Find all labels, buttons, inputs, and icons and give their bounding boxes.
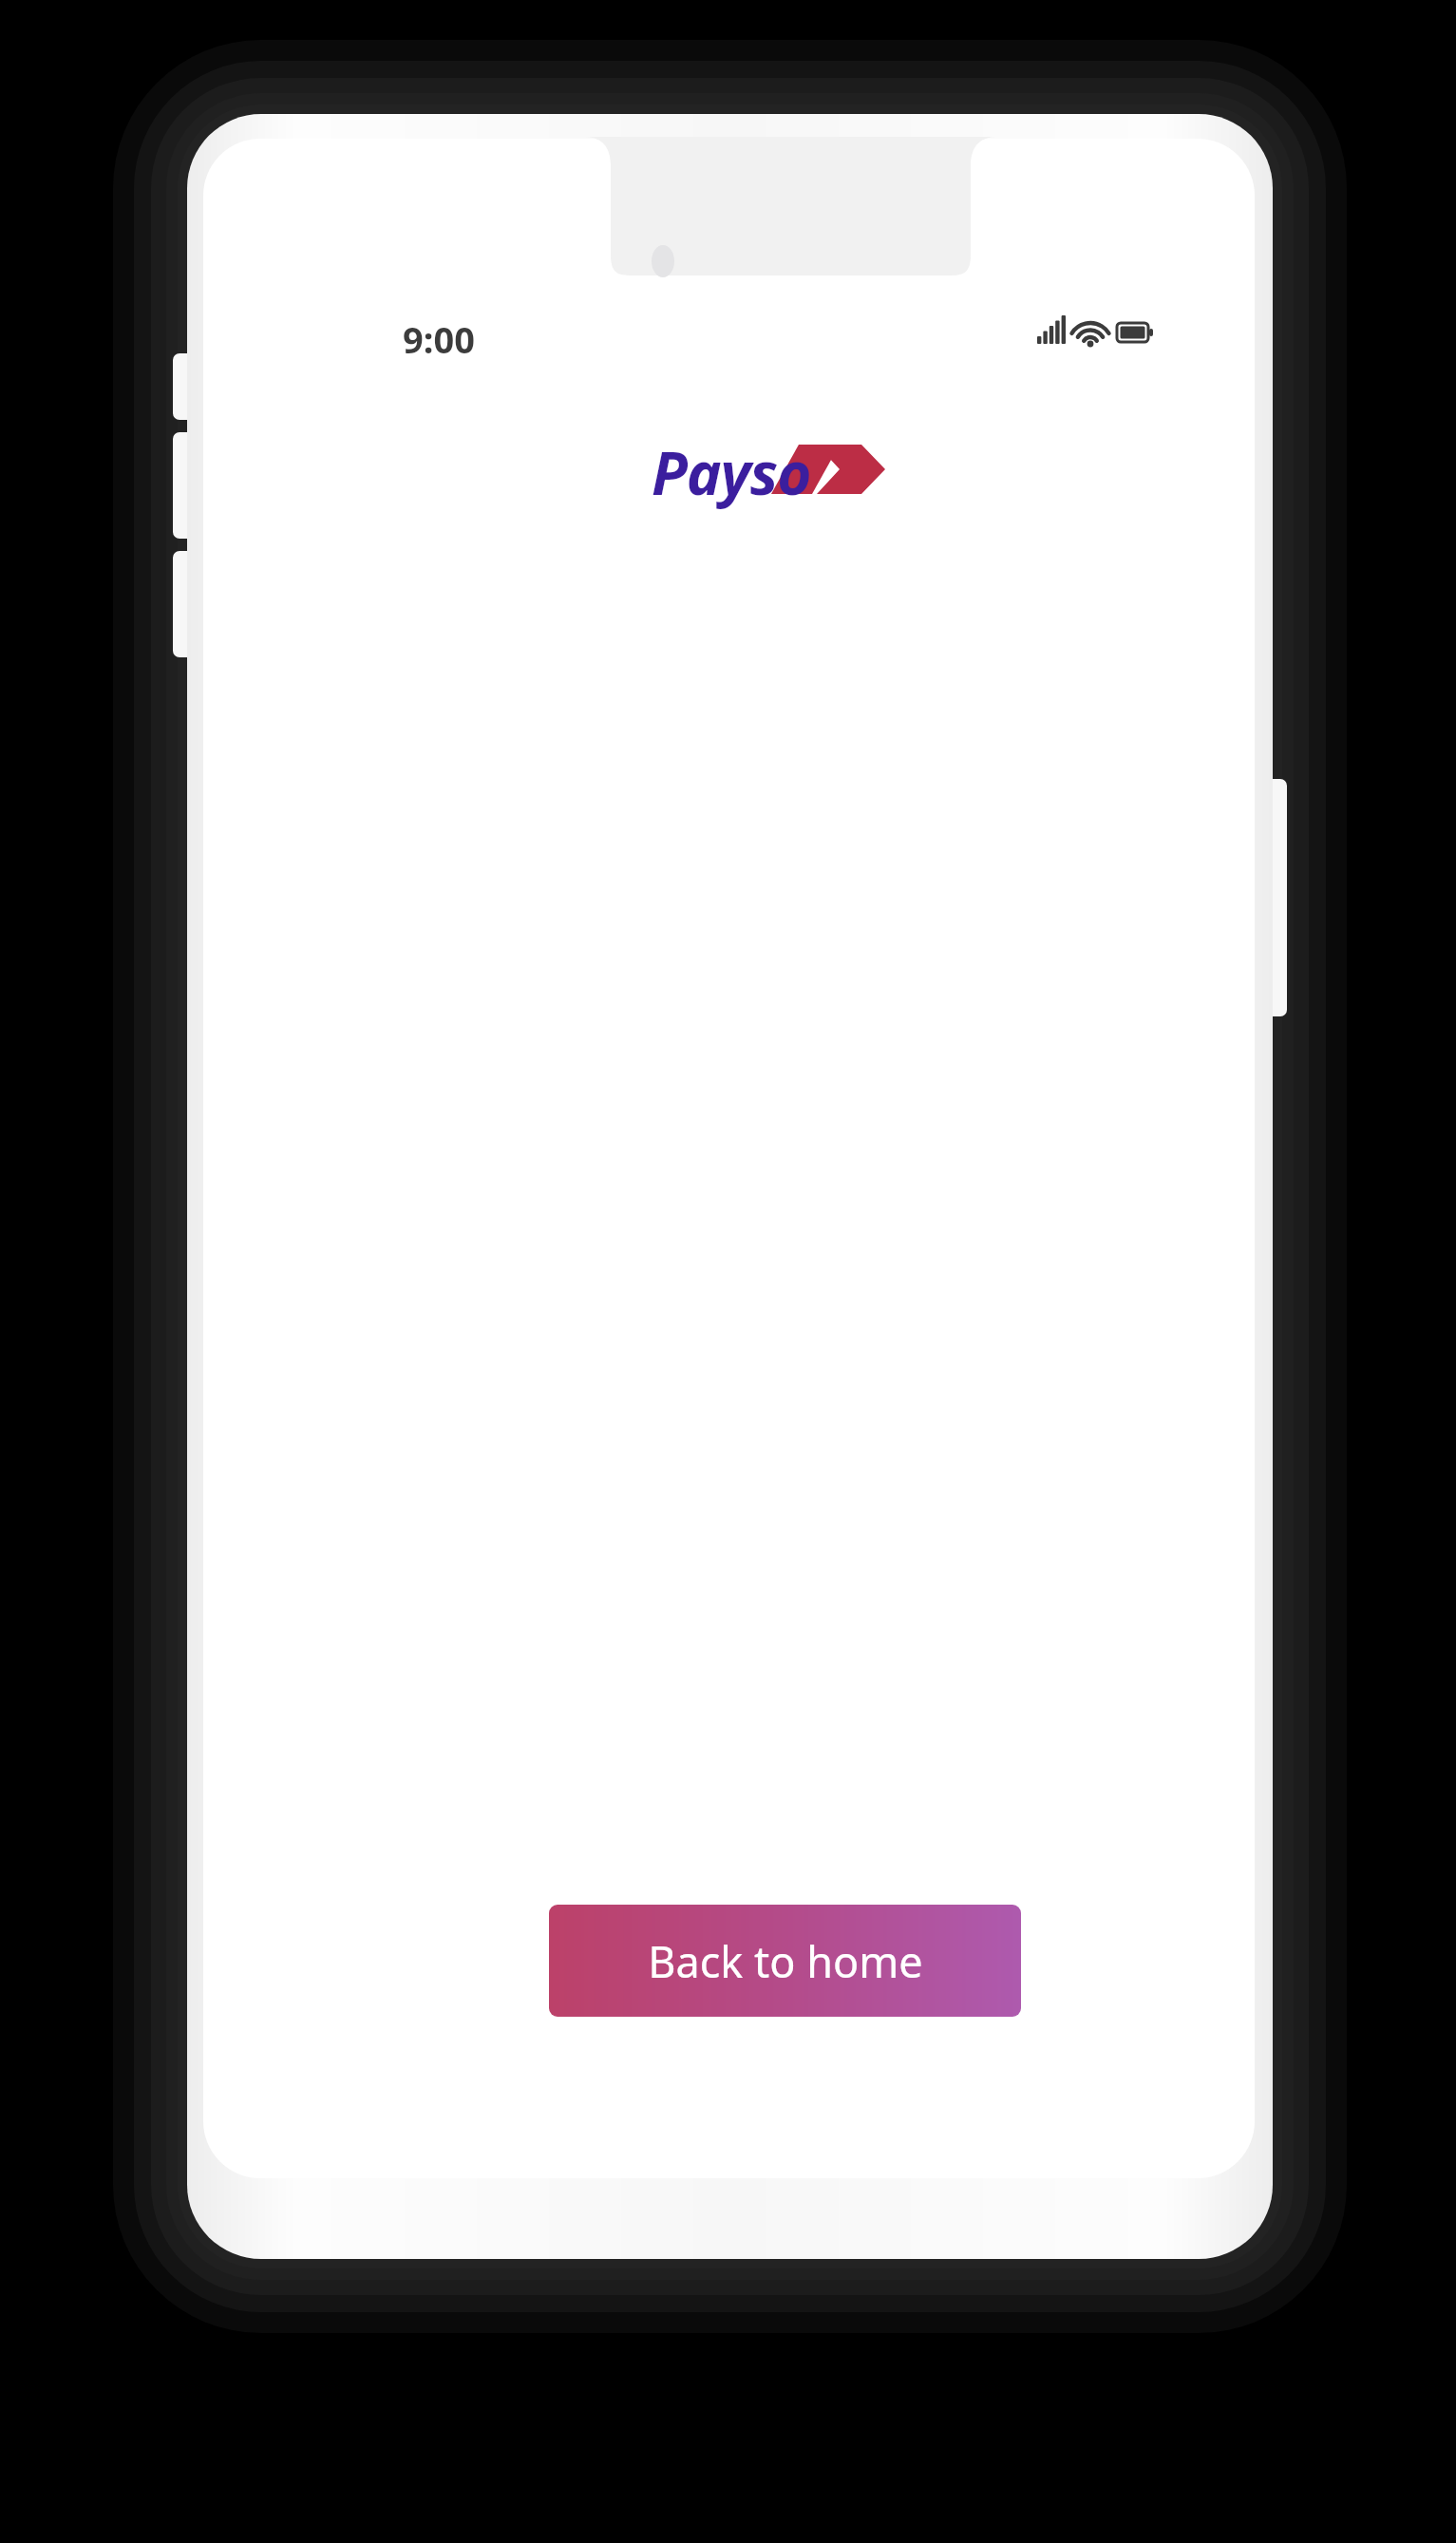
staticText: Back to home [648,1932,923,1990]
staticText: 9:00 [403,314,475,364]
button[interactable]: Back to home [549,1905,1021,2017]
staticText: Payso [652,432,811,512]
